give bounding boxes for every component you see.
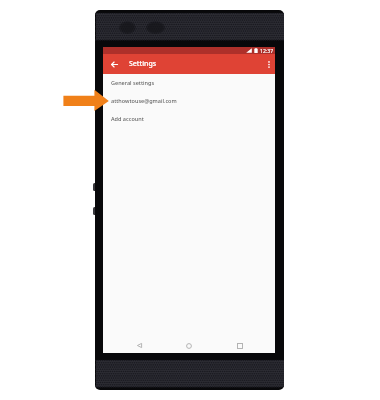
staticText: 12:37 bbox=[260, 47, 274, 54]
button[interactable]: Recents bbox=[229, 338, 251, 353]
staticText: Add account bbox=[111, 115, 144, 122]
button[interactable]: Add account bbox=[103, 110, 275, 128]
button[interactable]: Back bbox=[104, 54, 124, 74]
staticText: atthowtouse@gmail.com bbox=[111, 97, 177, 104]
staticText: General settings bbox=[111, 79, 155, 86]
button[interactable]: More options bbox=[259, 54, 279, 74]
button[interactable]: General settings bbox=[103, 74, 275, 92]
button[interactable]: atthowtouse@gmail.com bbox=[103, 92, 275, 110]
staticText: Settings bbox=[129, 59, 157, 69]
button[interactable]: Home bbox=[178, 338, 200, 353]
button[interactable]: Back bbox=[128, 338, 150, 353]
